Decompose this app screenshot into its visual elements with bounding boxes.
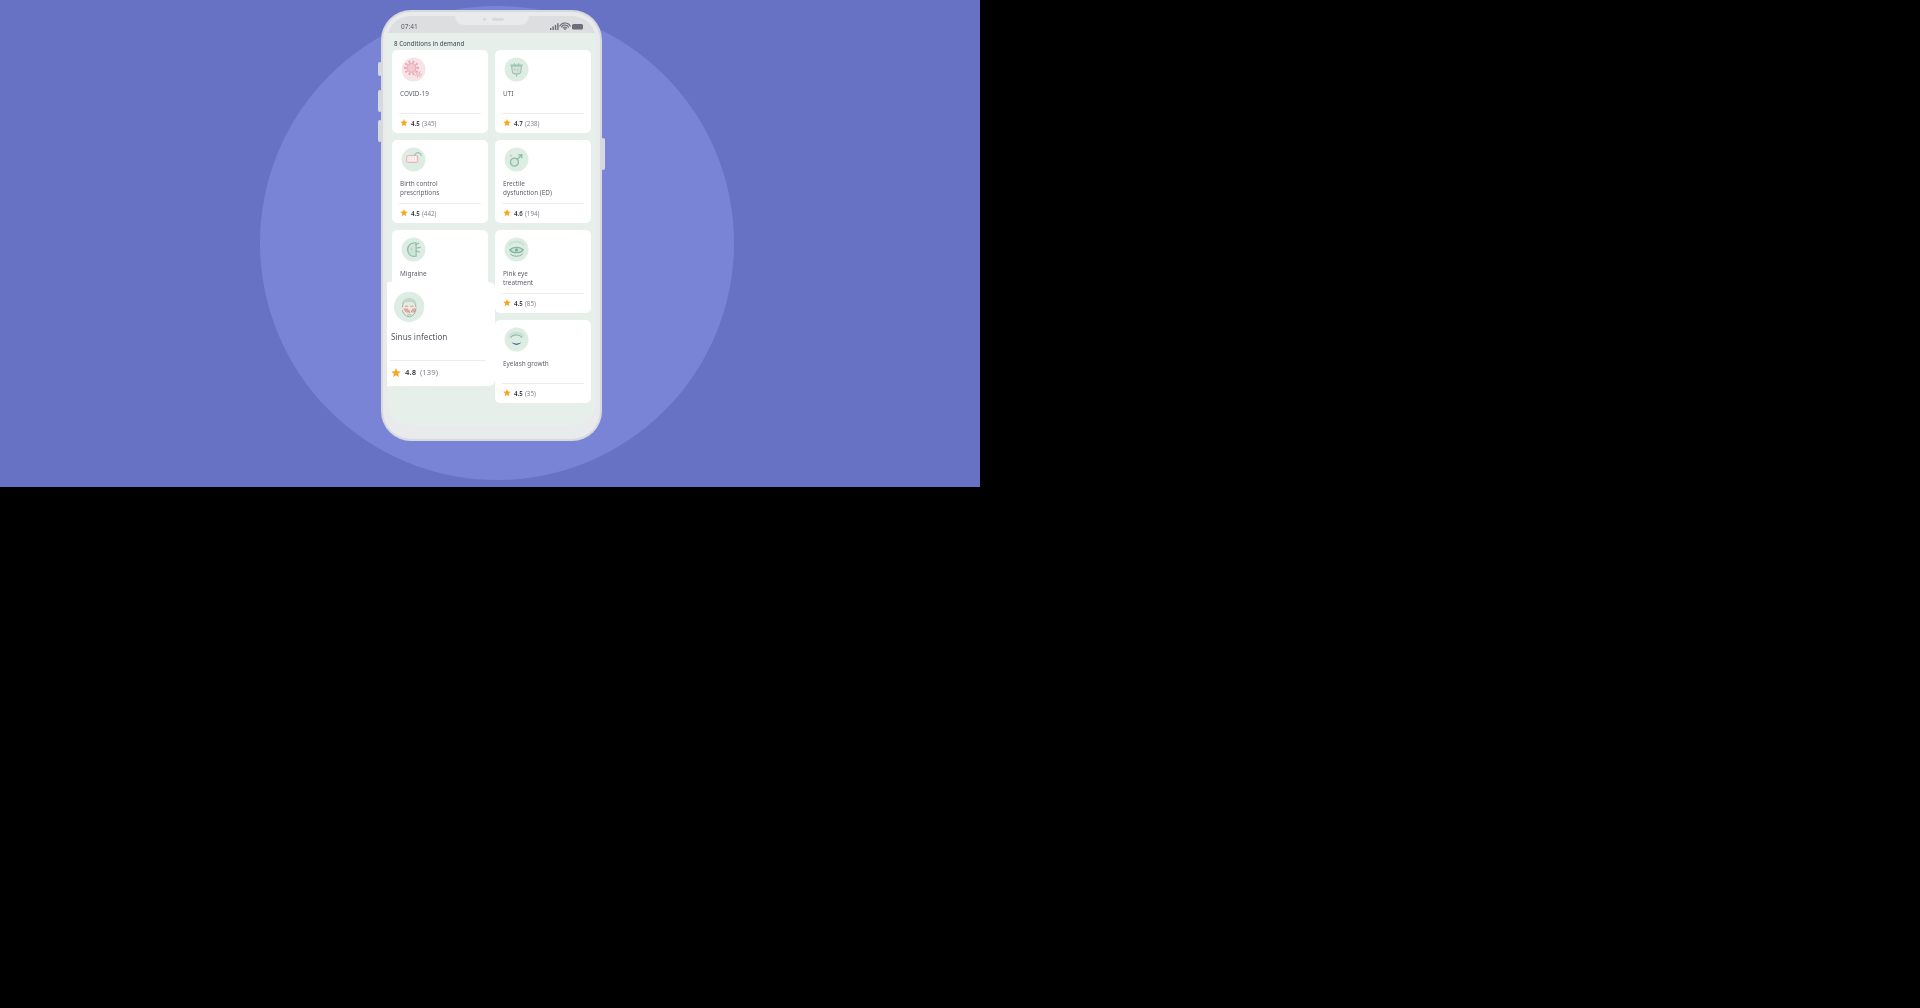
button[interactable]: UTI [495,50,591,133]
button[interactable]: Birth control prescriptions [392,140,488,223]
staticText: (139) [420,367,439,378]
staticText: 07:41 [401,22,418,31]
staticText: 8 Conditions in demand [394,39,465,47]
staticText: (442) [422,209,437,217]
staticText: 4.5 [411,119,420,127]
staticText: COVID-19 [400,89,429,98]
button[interactable]: Eyelash growth [495,320,591,403]
other: Sinus infection [392,291,425,324]
button[interactable]: Erectile dysfunction [495,140,591,223]
staticText: (85) [525,299,536,307]
other: Pink eye treatment [503,237,529,263]
other: Eyelash growth [503,327,529,353]
button[interactable]: Pink eye treatment [495,230,591,313]
button[interactable]: Sinus infection [387,282,495,386]
staticText: Erectile dysfunction (ED) [503,179,552,196]
staticText: 4.5 [514,299,523,307]
other: UTI [503,57,529,83]
staticText: (194) [525,209,540,217]
other: Birth control prescriptions [400,147,426,173]
staticText: Migraine [400,269,427,278]
staticText: Sinus infection [391,331,448,342]
other: Migraine [400,237,426,263]
staticText: UTI [503,89,514,98]
staticText: (139) [422,299,437,307]
staticText: 4.5 [514,389,523,397]
staticText: (238) [525,119,540,127]
staticText: 4.8 [405,367,417,378]
button[interactable]: Migraine [392,230,488,313]
button[interactable]: COVID-19 [392,50,488,133]
staticText: Birth control prescriptions [400,179,440,196]
staticText: (345) [422,119,437,127]
other: Erectile dysfunction [503,147,529,173]
staticText: 4.7 [514,119,523,127]
staticText: 4.6 [514,209,523,217]
staticText: (35) [525,389,536,397]
staticText: Pink eye treatment [503,269,534,286]
other: COVID-19 [400,57,426,83]
staticText: 4.5 [411,209,420,217]
staticText: 4.8 [411,299,420,307]
staticText: Eyelash growth [503,359,549,368]
